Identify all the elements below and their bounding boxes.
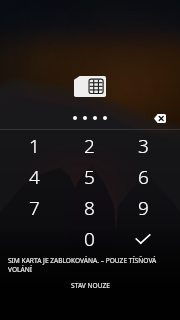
button[interactable]: 8 [65,192,113,224]
staticText: 3 [138,133,149,159]
staticText: 9 [138,195,149,221]
staticText: 8 [84,195,95,221]
button[interactable]: 4 [10,161,58,193]
button[interactable]: 2 [65,130,113,162]
button[interactable]: 3 [119,130,167,162]
staticText: 4 [29,164,40,190]
button[interactable]: 5 [65,161,113,193]
staticText: 6 [138,164,149,190]
staticText: STAV NOUZE [71,281,110,290]
staticText: 1 [29,133,40,159]
button[interactable]: Delete [148,106,172,130]
button[interactable]: STAV NOUZE [0,278,180,292]
button[interactable]: 9 [119,192,167,224]
button[interactable]: 7 [10,192,58,224]
button[interactable]: 6 [119,161,167,193]
button[interactable]: Enter [121,223,165,255]
staticText: 7 [29,195,40,221]
staticText: SIM KARTA JE ZABLOKOVÁNA. – POUZE TÍSŇOV… [8,256,172,274]
staticText: 0 [84,226,95,252]
staticText: 2 [84,133,95,159]
button[interactable]: 0 [65,223,113,255]
button[interactable]: 1 [10,130,58,162]
staticText: 5 [84,164,95,190]
